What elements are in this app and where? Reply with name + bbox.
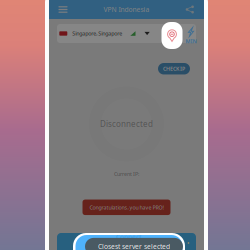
staticText: Closest server selected — [98, 242, 170, 250]
staticText: CHECK IP — [163, 65, 185, 72]
staticText: Disconnected — [100, 119, 153, 129]
button[interactable]: Change server location — [161, 22, 182, 49]
staticText: VPN Indonesia — [103, 5, 149, 14]
button[interactable]: Share — [182, 0, 198, 19]
button[interactable]: Singapore, Singapore — [57, 24, 196, 43]
button[interactable]: Congratulations, you have PRO! — [82, 200, 170, 215]
staticText: Congratulations, you have PRO! — [89, 204, 163, 211]
button[interactable]: CHECK IP — [158, 63, 190, 74]
staticText: Connect — [116, 233, 142, 241]
staticText: Current IP: — [114, 170, 139, 178]
staticText: Singapore, Singapore — [72, 30, 122, 37]
button[interactable]: Menu — [55, 0, 71, 19]
button[interactable]: Closest server selected — [85, 238, 183, 250]
staticText: MIN — [185, 38, 196, 45]
